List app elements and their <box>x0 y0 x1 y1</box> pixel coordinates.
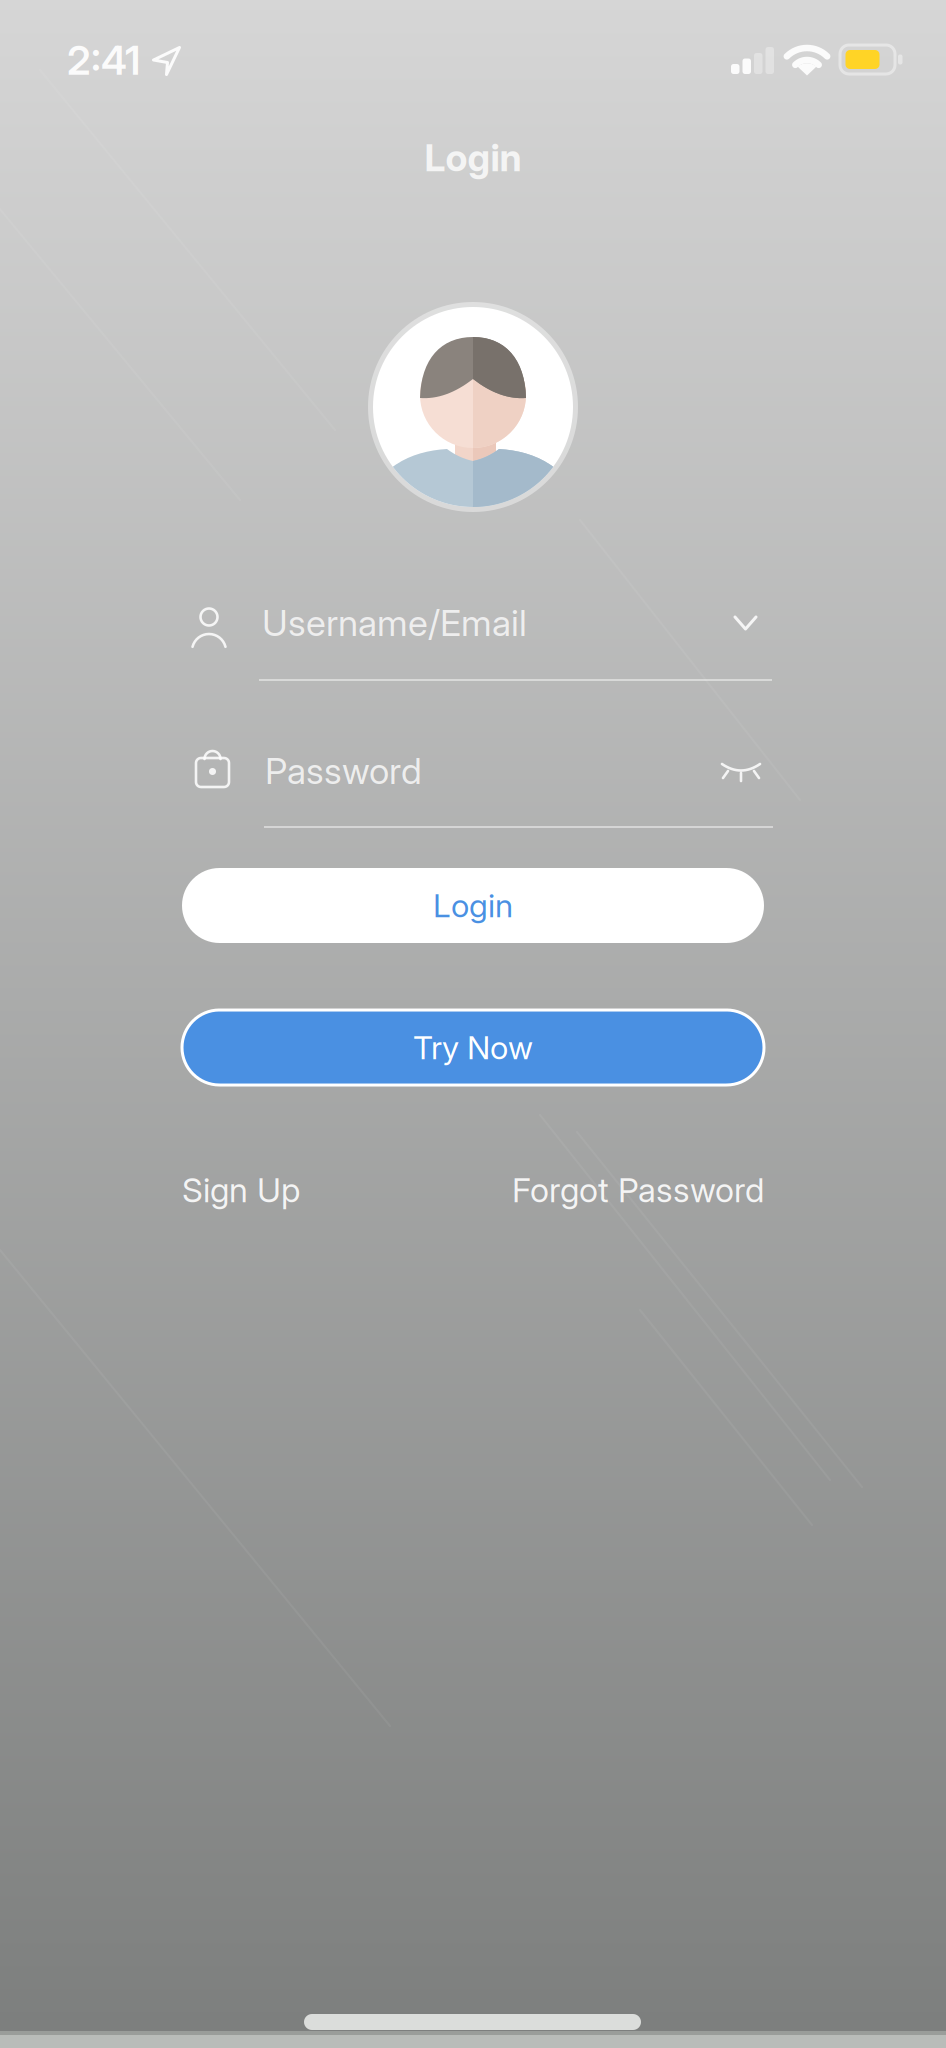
staticText: Login <box>433 886 513 925</box>
staticText: Sign Up <box>182 1170 300 1210</box>
staticText: Try Now <box>413 1028 533 1067</box>
staticText: Password <box>265 749 422 793</box>
staticText: Username/Email <box>262 601 527 645</box>
staticText: 2:41 <box>67 36 140 84</box>
button[interactable]: Sign Up <box>182 1170 300 1210</box>
button[interactable]: Show account list <box>730 612 760 634</box>
staticText: Login <box>424 135 521 180</box>
button[interactable]: Forgot Password <box>512 1170 764 1210</box>
button[interactable]: Try Now <box>182 1010 764 1085</box>
button[interactable]: Login <box>182 868 764 943</box>
button[interactable]: Show password <box>719 756 763 786</box>
staticText: Forgot Password <box>512 1170 764 1210</box>
